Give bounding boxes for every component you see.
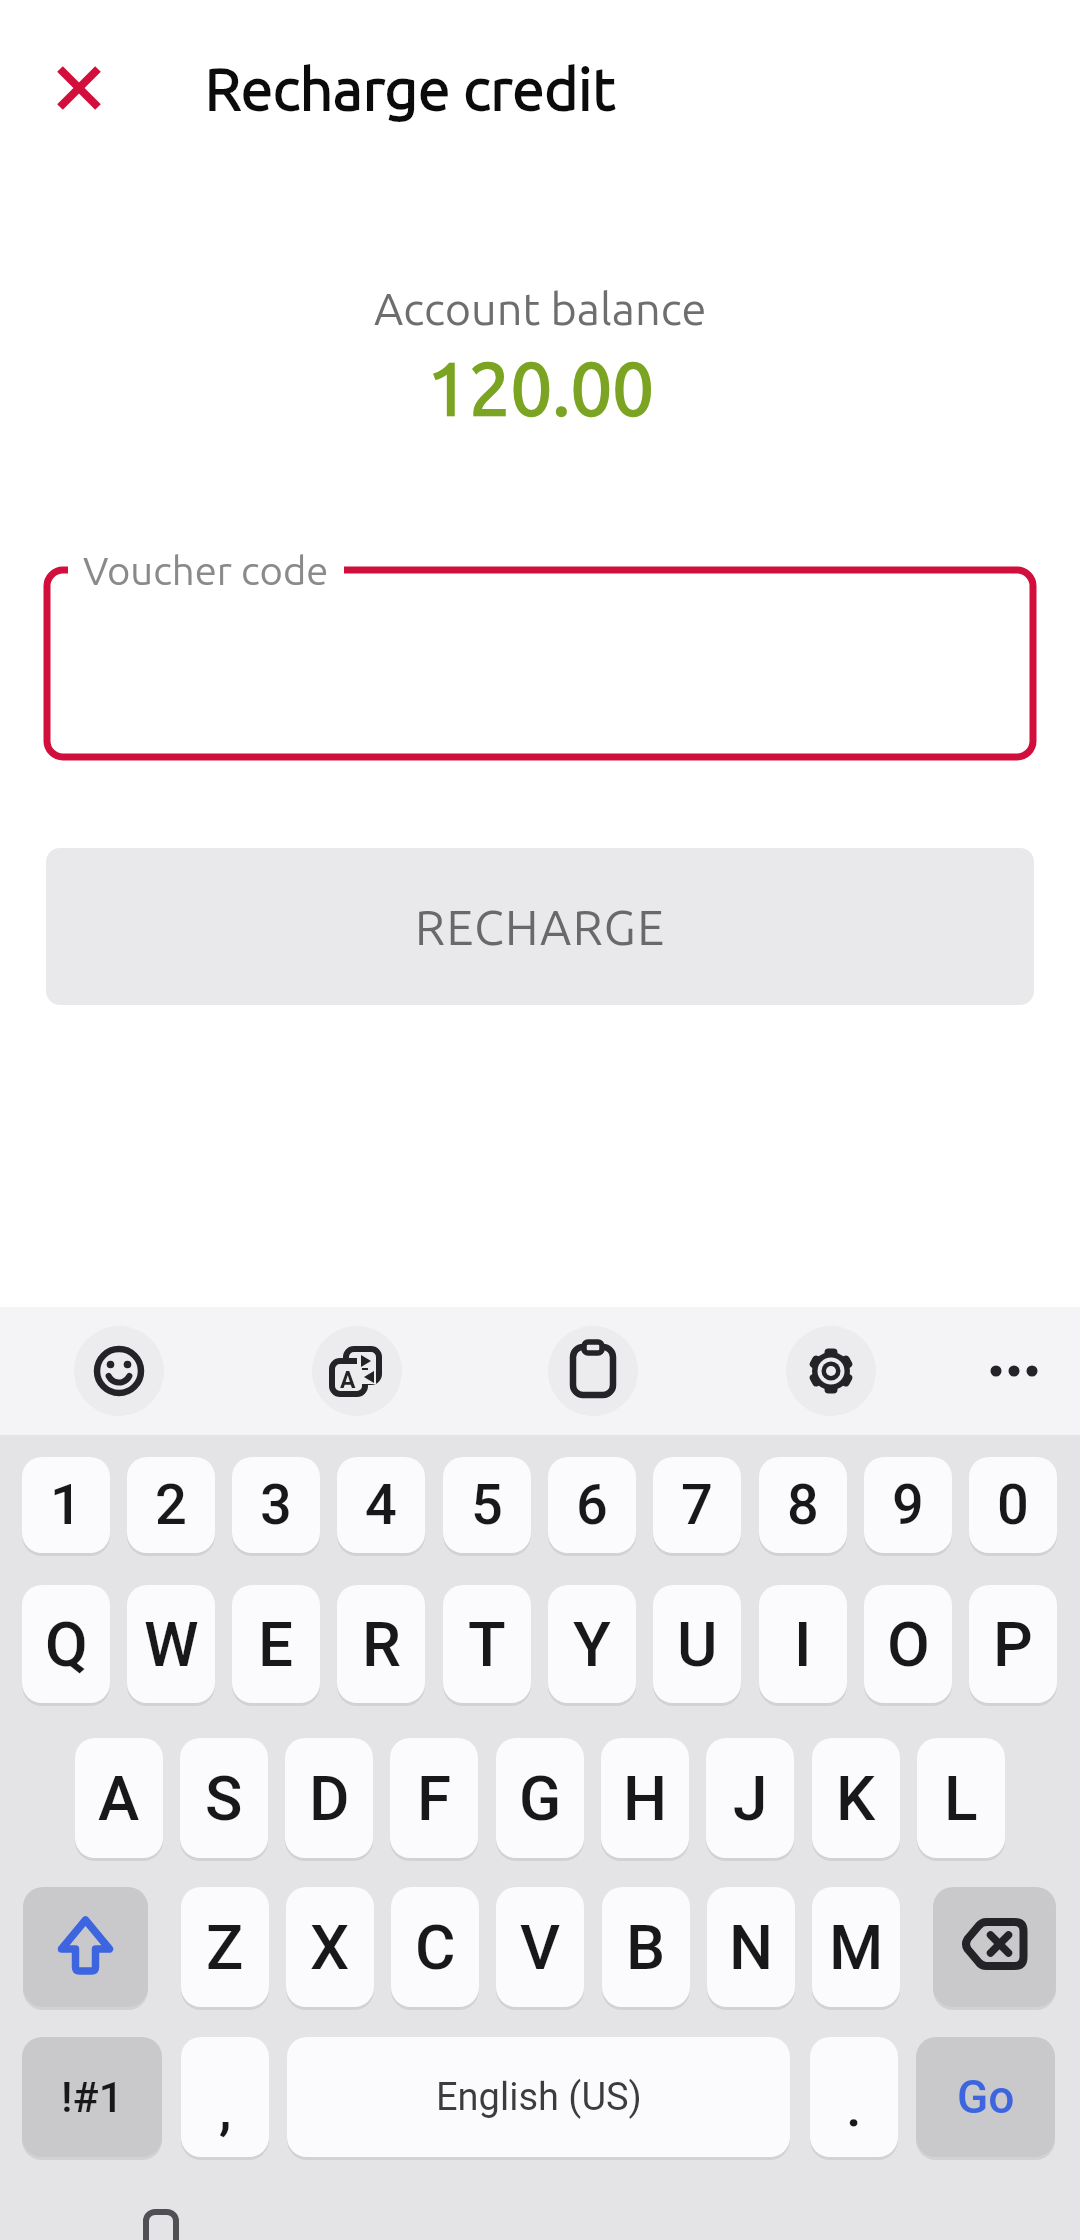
button[interactable]: W xyxy=(127,1585,215,1703)
staticText: F xyxy=(417,1762,452,1835)
button[interactable]: P xyxy=(969,1585,1057,1703)
button[interactable]: A xyxy=(75,1738,163,1858)
staticText: English (US) xyxy=(436,2075,642,2120)
button[interactable]: 3 xyxy=(232,1457,320,1553)
staticText: I xyxy=(794,1608,812,1681)
staticText: W xyxy=(144,1608,199,1681)
staticText: S xyxy=(205,1762,243,1835)
staticText: 0 xyxy=(997,1472,1029,1538)
staticText: J xyxy=(733,1762,768,1835)
staticText: M xyxy=(829,1911,884,1984)
button[interactable]: I xyxy=(759,1585,847,1703)
staticText: A xyxy=(340,1367,356,1394)
staticText: V xyxy=(520,1911,561,1984)
staticText: L xyxy=(944,1762,978,1835)
staticText: 4 xyxy=(365,1472,397,1538)
staticText: B xyxy=(626,1911,666,1984)
button[interactable]: 1 xyxy=(22,1457,110,1553)
button[interactable]: Go xyxy=(916,2037,1055,2157)
button[interactable]: T xyxy=(443,1585,531,1703)
button[interactable]: C xyxy=(391,1887,479,2007)
staticText: 5 xyxy=(471,1472,503,1538)
staticText: O xyxy=(887,1608,930,1681)
button[interactable] xyxy=(548,1326,638,1416)
button[interactable]: M xyxy=(812,1887,900,2007)
button[interactable] xyxy=(23,1887,148,2007)
staticText: RECHARGE xyxy=(415,900,666,954)
staticText: G xyxy=(519,1762,562,1835)
button[interactable]: V xyxy=(496,1887,584,2007)
button[interactable]: S xyxy=(180,1738,268,1858)
button[interactable]: !#1 xyxy=(22,2037,162,2157)
staticText: T xyxy=(468,1608,506,1681)
staticText: D xyxy=(309,1762,350,1835)
button[interactable]: E xyxy=(232,1585,320,1703)
button[interactable] xyxy=(74,1326,164,1416)
button[interactable] xyxy=(47,570,1033,757)
button[interactable]: 6 xyxy=(548,1457,636,1553)
staticText: K xyxy=(836,1762,876,1835)
staticText: 3 xyxy=(260,1472,292,1538)
staticText: U xyxy=(677,1608,718,1681)
button[interactable]: B xyxy=(602,1887,690,2007)
button[interactable]: . xyxy=(810,2037,898,2157)
staticText: 8 xyxy=(787,1472,819,1538)
staticText: 2 xyxy=(155,1472,187,1538)
button[interactable]: 0 xyxy=(969,1457,1057,1553)
staticText: 9 xyxy=(892,1472,924,1538)
button[interactable]: X xyxy=(286,1887,374,2007)
button[interactable]: , xyxy=(181,2037,269,2157)
staticText: Voucher code xyxy=(83,548,329,593)
button[interactable]: G xyxy=(496,1738,584,1858)
staticText: . xyxy=(846,2074,862,2140)
staticText: R xyxy=(362,1608,401,1681)
button[interactable] xyxy=(312,1326,402,1416)
staticText: , xyxy=(219,2076,232,2142)
button[interactable]: J xyxy=(706,1738,794,1858)
button[interactable]: Z xyxy=(181,1887,269,2007)
button[interactable]: U xyxy=(653,1585,741,1703)
staticText: 1 xyxy=(50,1472,82,1538)
button[interactable]: D xyxy=(285,1738,373,1858)
staticText: C xyxy=(415,1911,456,1984)
staticText: E xyxy=(258,1608,294,1681)
staticText: Y xyxy=(573,1608,611,1681)
button[interactable] xyxy=(55,64,103,112)
staticText: X xyxy=(310,1911,350,1984)
staticText: Q xyxy=(45,1608,88,1681)
button[interactable]: O xyxy=(864,1585,952,1703)
staticText: P xyxy=(993,1608,1033,1681)
staticText: Z xyxy=(206,1911,244,1984)
button[interactable]: 8 xyxy=(759,1457,847,1553)
button[interactable]: 2 xyxy=(127,1457,215,1553)
button[interactable]: English (US) xyxy=(287,2037,790,2157)
button[interactable] xyxy=(786,1326,876,1416)
staticText: H xyxy=(623,1762,668,1835)
staticText: N xyxy=(729,1911,774,1984)
staticText: !#1 xyxy=(61,2072,124,2122)
staticText: 7 xyxy=(681,1472,713,1538)
button[interactable]: F xyxy=(390,1738,478,1858)
button[interactable]: 5 xyxy=(443,1457,531,1553)
button[interactable]: N xyxy=(707,1887,795,2007)
button[interactable]: 7 xyxy=(653,1457,741,1553)
button[interactable]: R xyxy=(337,1585,425,1703)
staticText: A xyxy=(98,1762,140,1835)
button[interactable]: 9 xyxy=(864,1457,952,1553)
button[interactable]: L xyxy=(917,1738,1005,1858)
staticText: Go xyxy=(957,2070,1015,2124)
staticText: 6 xyxy=(576,1472,608,1538)
button[interactable]: H xyxy=(601,1738,689,1858)
staticText: Recharge credit xyxy=(205,56,616,121)
button[interactable]: Q xyxy=(22,1585,110,1703)
button[interactable]: K xyxy=(812,1738,900,1858)
button[interactable] xyxy=(933,1887,1056,2007)
button[interactable]: Y xyxy=(548,1585,636,1703)
staticText: Account balance xyxy=(374,283,707,333)
staticText: 120.00 xyxy=(427,346,654,429)
button[interactable] xyxy=(969,1326,1059,1416)
button[interactable]: 4 xyxy=(337,1457,425,1553)
button[interactable]: RECHARGE xyxy=(46,848,1034,1005)
